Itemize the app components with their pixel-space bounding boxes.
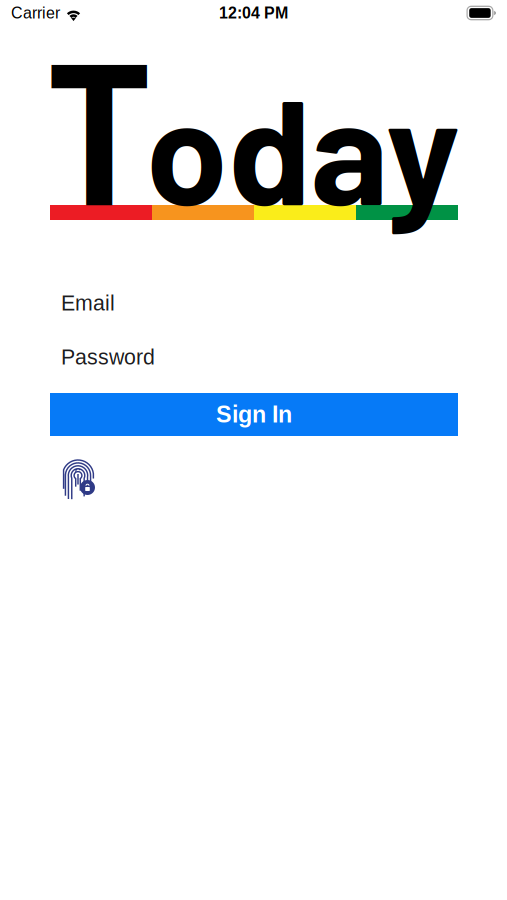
button[interactable]: Sign In: [50, 393, 458, 436]
staticText: T: [48, 0, 150, 269]
staticText: Password: [61, 345, 155, 369]
staticText: 12:04 PM: [219, 4, 288, 22]
button[interactable]: Password: [50, 336, 458, 378]
button[interactable]: Email: [50, 282, 458, 324]
staticText: Email: [61, 291, 115, 315]
button[interactable]: Sign in with Touch ID: [61, 450, 95, 496]
staticText: Carrier: [11, 4, 60, 22]
staticText: oday: [146, 58, 460, 234]
staticText: Sign In: [216, 401, 292, 428]
